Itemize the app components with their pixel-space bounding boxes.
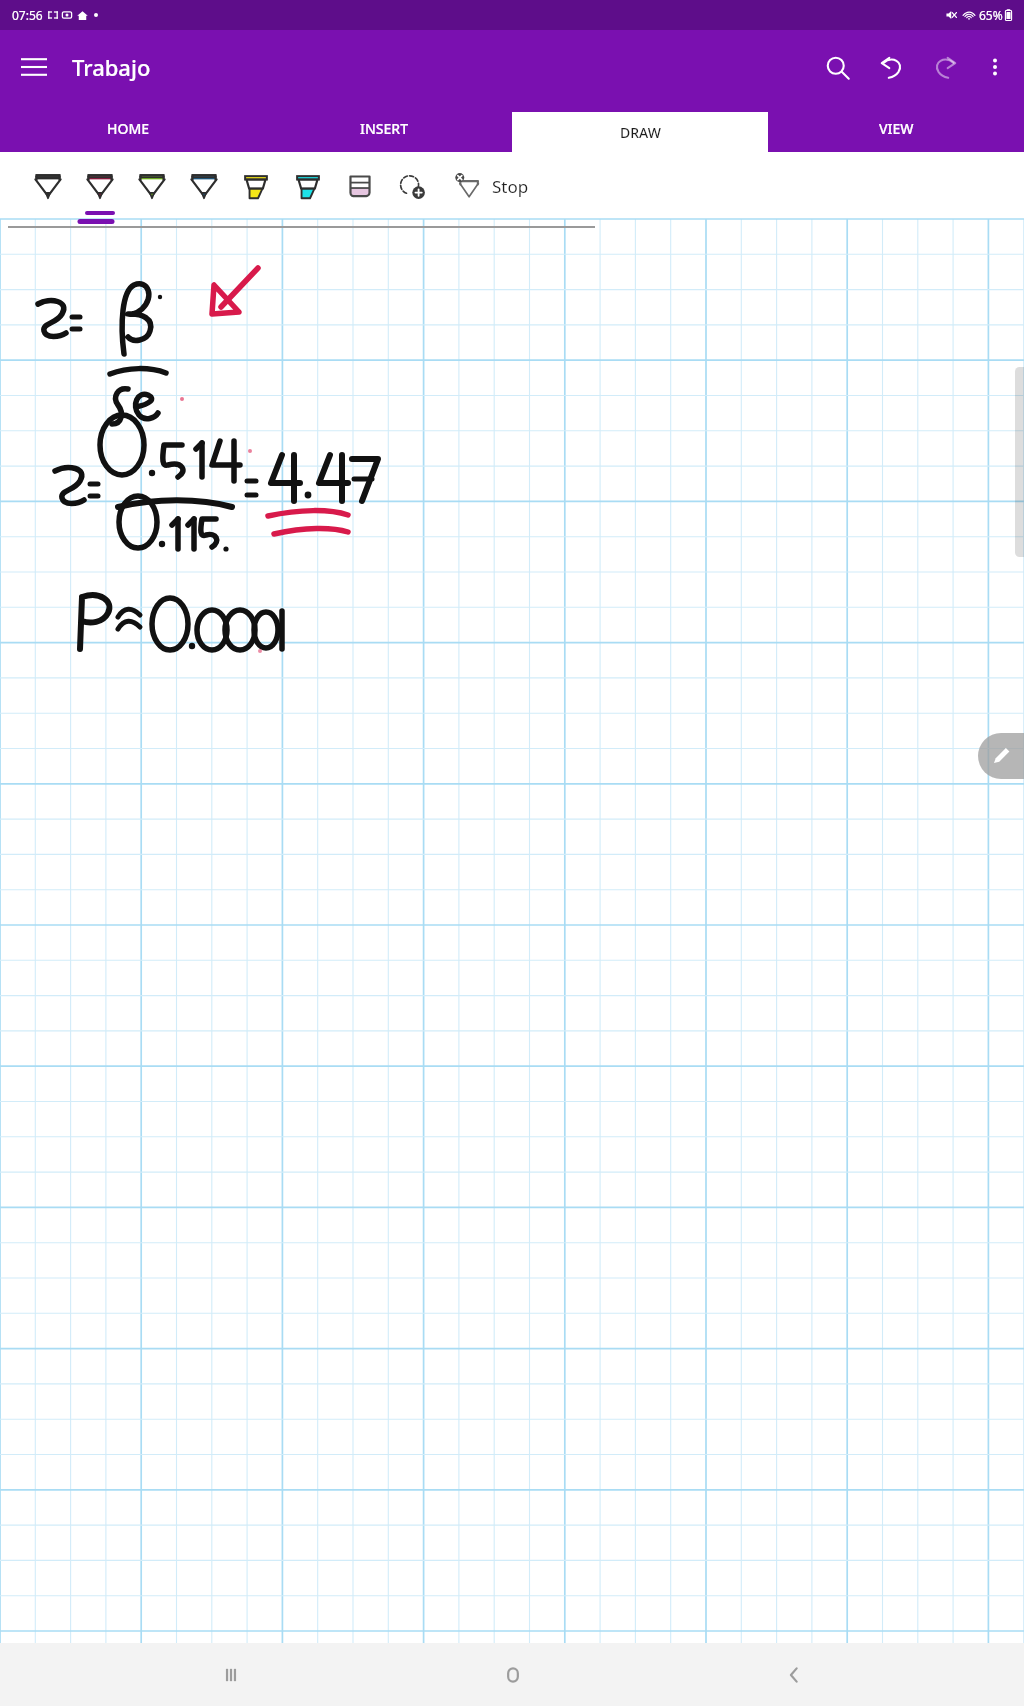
button[interactable]: Pen tool [126, 152, 178, 219]
button[interactable]: Stop [452, 160, 529, 212]
staticText: INSERT [360, 119, 409, 138]
staticText: 65% [979, 7, 1003, 23]
button[interactable]: Add pen [386, 160, 438, 212]
button[interactable]: INSERT [256, 104, 512, 152]
staticText: HOME [107, 119, 150, 138]
button[interactable]: More options [972, 44, 1018, 90]
button[interactable]: Back [653, 1643, 934, 1706]
button[interactable]: Pen tool [22, 152, 74, 219]
button[interactable]: Search [810, 40, 864, 94]
button[interactable]: DRAW [512, 112, 768, 152]
staticText: Trabajo [72, 52, 151, 82]
staticText: Stop [492, 175, 529, 198]
button[interactable]: Pen tool [230, 152, 282, 219]
button[interactable]: Pen tool [178, 152, 230, 219]
button[interactable]: Redo [918, 40, 972, 94]
button[interactable]: Pen tool [74, 152, 126, 219]
button[interactable]: Pen tool [282, 152, 334, 219]
staticText: DRAW [620, 123, 661, 142]
button[interactable]: HOME [0, 104, 256, 152]
button[interactable]: Home [372, 1643, 653, 1706]
button[interactable]: Recent apps [90, 1643, 372, 1706]
button[interactable]: Undo [864, 40, 918, 94]
button[interactable]: Pen tool [334, 152, 386, 219]
button[interactable]: Open navigation menu [6, 39, 62, 95]
staticText: VIEW [879, 119, 914, 138]
staticText: 07:56 [12, 7, 43, 23]
button[interactable]: VIEW [768, 104, 1024, 152]
button[interactable]: Edit [978, 733, 1024, 779]
